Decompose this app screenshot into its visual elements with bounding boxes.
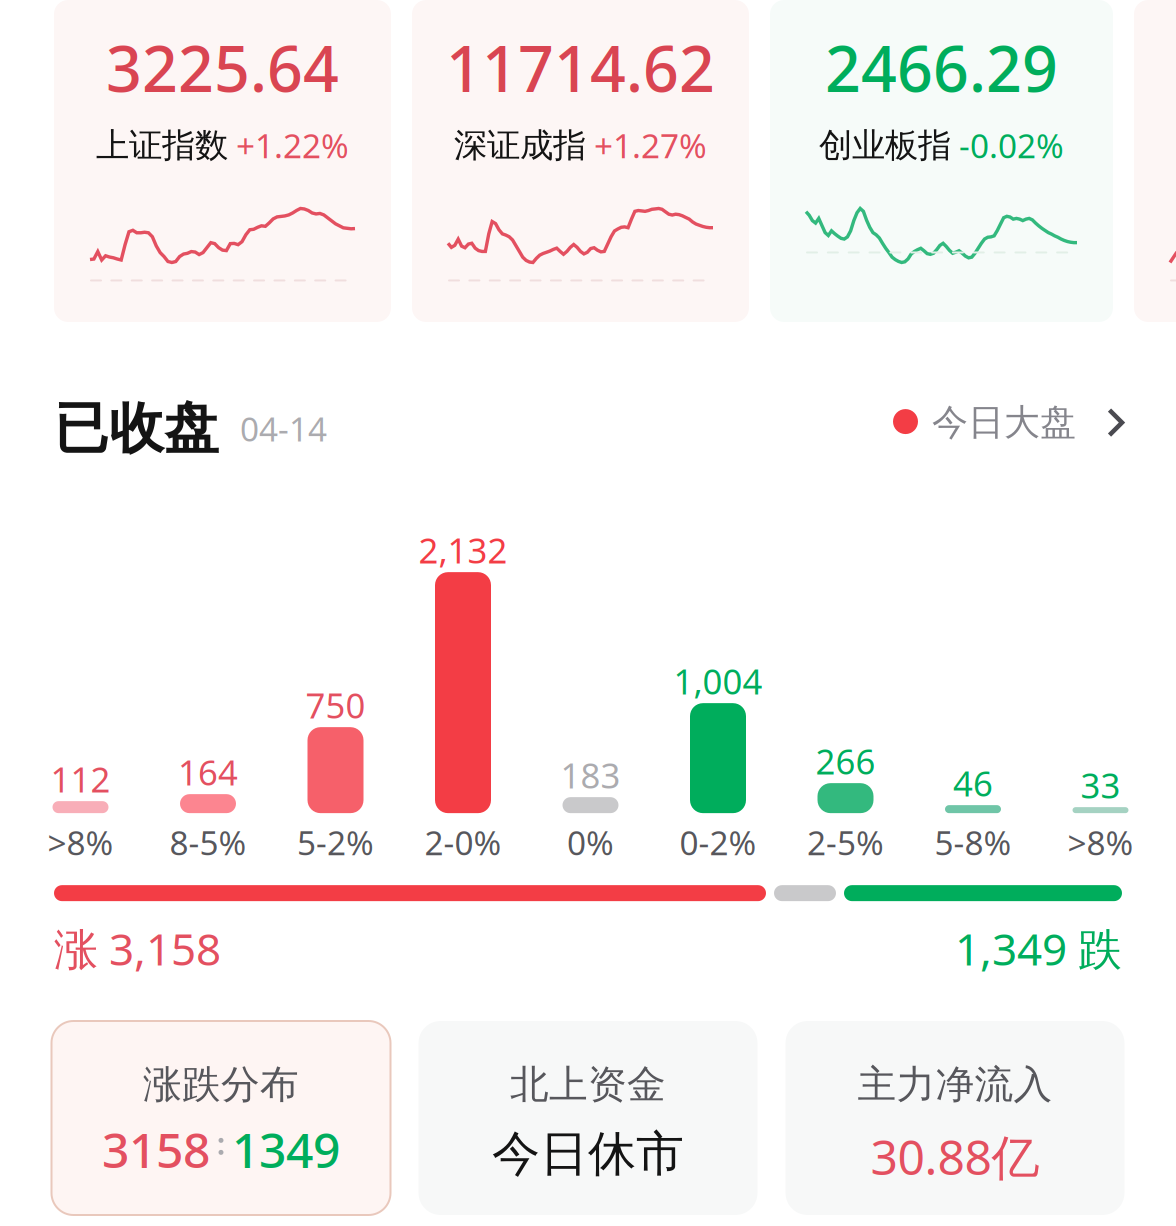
staticText: 主力净流入 [857, 1061, 1052, 1108]
staticText: 33 [1080, 762, 1120, 808]
button[interactable]: 涨跌分布 [51, 1021, 390, 1215]
staticText: 5-2% [297, 820, 374, 864]
staticText: 30.88亿 [870, 1124, 1039, 1188]
staticText: 创业板指 [819, 125, 951, 166]
staticText: 北上资金 [510, 1061, 666, 1108]
staticText: 2-5% [807, 820, 884, 864]
button[interactable]: 11714.62 [412, 0, 749, 322]
staticText: 46 [953, 760, 993, 806]
button[interactable]: 2466.29 [770, 0, 1113, 322]
button[interactable]: 主力净流入 [785, 1021, 1124, 1215]
staticText: 3158 [102, 1117, 210, 1181]
staticText: 2-0% [424, 820, 501, 864]
button[interactable]: 北上资金 [418, 1021, 757, 1215]
staticText: 深证成指 [454, 125, 586, 166]
staticText: 04-14 [240, 406, 327, 451]
staticText: +1.27% [594, 123, 707, 167]
staticText: 已收盘 [54, 395, 219, 462]
staticText: 上证指数 [96, 125, 228, 166]
staticText: 11714.62 [446, 26, 715, 109]
staticText: 1,004 [673, 658, 762, 704]
staticText: 3225.64 [106, 26, 339, 109]
button[interactable]: 今日大盘 [893, 406, 1122, 451]
staticText: 涨 3,158 [54, 919, 221, 977]
staticText: 266 [815, 738, 875, 784]
staticText: 2,132 [418, 527, 507, 573]
staticText: 涨跌分布 [143, 1061, 299, 1108]
staticText: >8% [47, 820, 113, 864]
staticText: +1.22% [236, 123, 349, 167]
staticText: 今日大盘 [932, 400, 1076, 445]
staticText: 1349 [232, 1117, 340, 1181]
staticText: 112 [50, 756, 110, 802]
staticText: 164 [178, 749, 238, 795]
staticText: 今日休市 [492, 1124, 684, 1183]
staticText: 1,349 跌 [955, 919, 1122, 977]
staticText: 2466.29 [825, 26, 1058, 109]
staticText: -0.02% [959, 123, 1064, 167]
staticText: 0% [567, 820, 614, 864]
staticText: 8-5% [169, 820, 246, 864]
staticText: 0-2% [679, 820, 756, 864]
staticText: 183 [560, 752, 620, 798]
button[interactable]: 3225.64 [54, 0, 391, 322]
staticText: >8% [1067, 820, 1133, 864]
staticText: 5-8% [934, 820, 1011, 864]
button[interactable]: 1034.5 [1134, 0, 1176, 322]
staticText: 750 [305, 682, 365, 728]
